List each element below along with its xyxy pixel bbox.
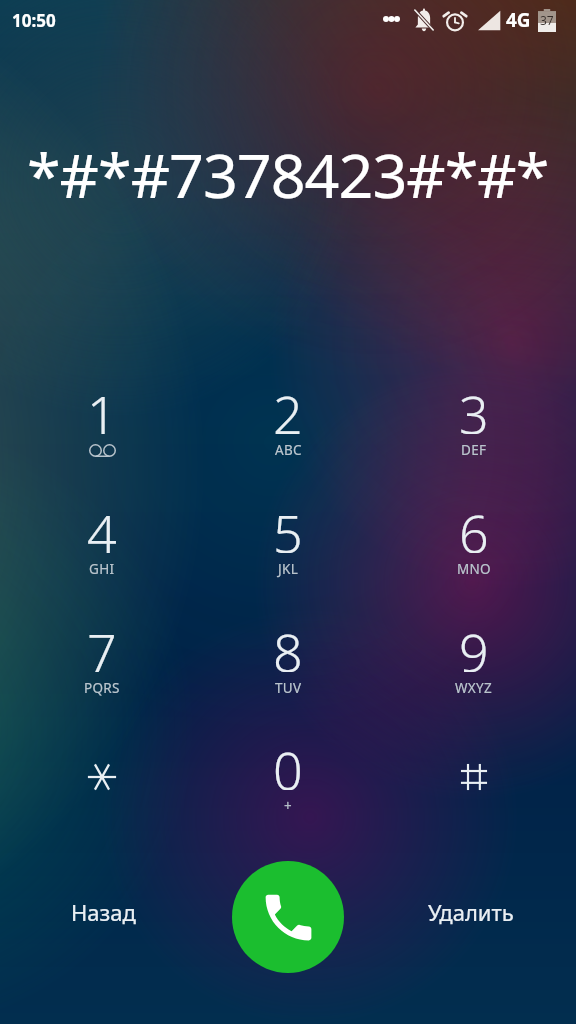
staticText: 4G — [506, 7, 531, 33]
button[interactable]: 0 — [230, 734, 346, 838]
button[interactable]: Удалить — [376, 856, 566, 968]
staticText: 9 — [459, 616, 489, 672]
staticText: *#*#7378423#*#* — [27, 133, 549, 216]
staticText: 3 — [459, 378, 489, 434]
button[interactable]: 1 — [44, 378, 160, 482]
button[interactable]: Call — [232, 861, 344, 973]
staticText: 7 — [87, 616, 117, 672]
staticText: 0 — [273, 734, 303, 790]
button[interactable]: Star — [56, 729, 148, 825]
button[interactable]: 2 — [230, 378, 346, 482]
button[interactable]: Назад — [8, 856, 198, 968]
button[interactable]: Pound — [428, 729, 520, 825]
staticText: Назад — [71, 897, 136, 927]
staticText: 4 — [87, 497, 117, 553]
staticText: 2 — [273, 378, 303, 434]
staticText: 37 — [540, 12, 554, 28]
button[interactable]: 6 — [416, 497, 532, 601]
button[interactable]: 5 — [230, 497, 346, 601]
button[interactable]: 4 — [44, 497, 160, 601]
staticText: PQRS — [84, 679, 120, 697]
staticText: MNO — [457, 560, 491, 578]
button[interactable]: 8 — [230, 616, 346, 720]
staticText: JKL — [278, 560, 299, 578]
staticText: + — [284, 797, 293, 815]
staticText: WXYZ — [455, 679, 493, 697]
staticText: ABC — [275, 441, 302, 459]
staticText: 1 — [87, 378, 117, 434]
button[interactable]: 7 — [44, 616, 160, 720]
staticText: TUV — [275, 679, 302, 697]
staticText: 6 — [459, 497, 489, 553]
staticText: GHI — [89, 560, 115, 578]
staticText: 5 — [273, 497, 303, 553]
staticText: DEF — [461, 441, 487, 459]
button[interactable]: 3 — [416, 378, 532, 482]
staticText: Удалить — [428, 897, 514, 927]
staticText: 8 — [273, 616, 303, 672]
staticText: 10:50 — [12, 9, 56, 32]
button[interactable]: 9 — [416, 616, 532, 720]
